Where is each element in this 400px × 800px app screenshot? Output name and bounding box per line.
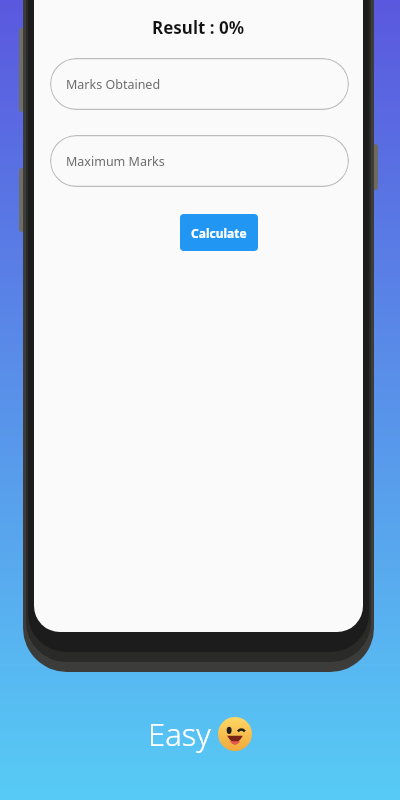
- staticText: Marks Obtained: [66, 76, 161, 93]
- button[interactable]: Marks Obtained: [50, 58, 349, 110]
- staticText: Easy: [148, 713, 211, 755]
- other: Winking face: [218, 717, 252, 751]
- staticText: Maximum Marks: [66, 153, 165, 170]
- staticText: Result : 0%: [152, 16, 245, 39]
- button[interactable]: Maximum Marks: [50, 135, 349, 187]
- staticText: Calculate: [191, 225, 247, 241]
- button[interactable]: Calculate: [180, 214, 258, 251]
